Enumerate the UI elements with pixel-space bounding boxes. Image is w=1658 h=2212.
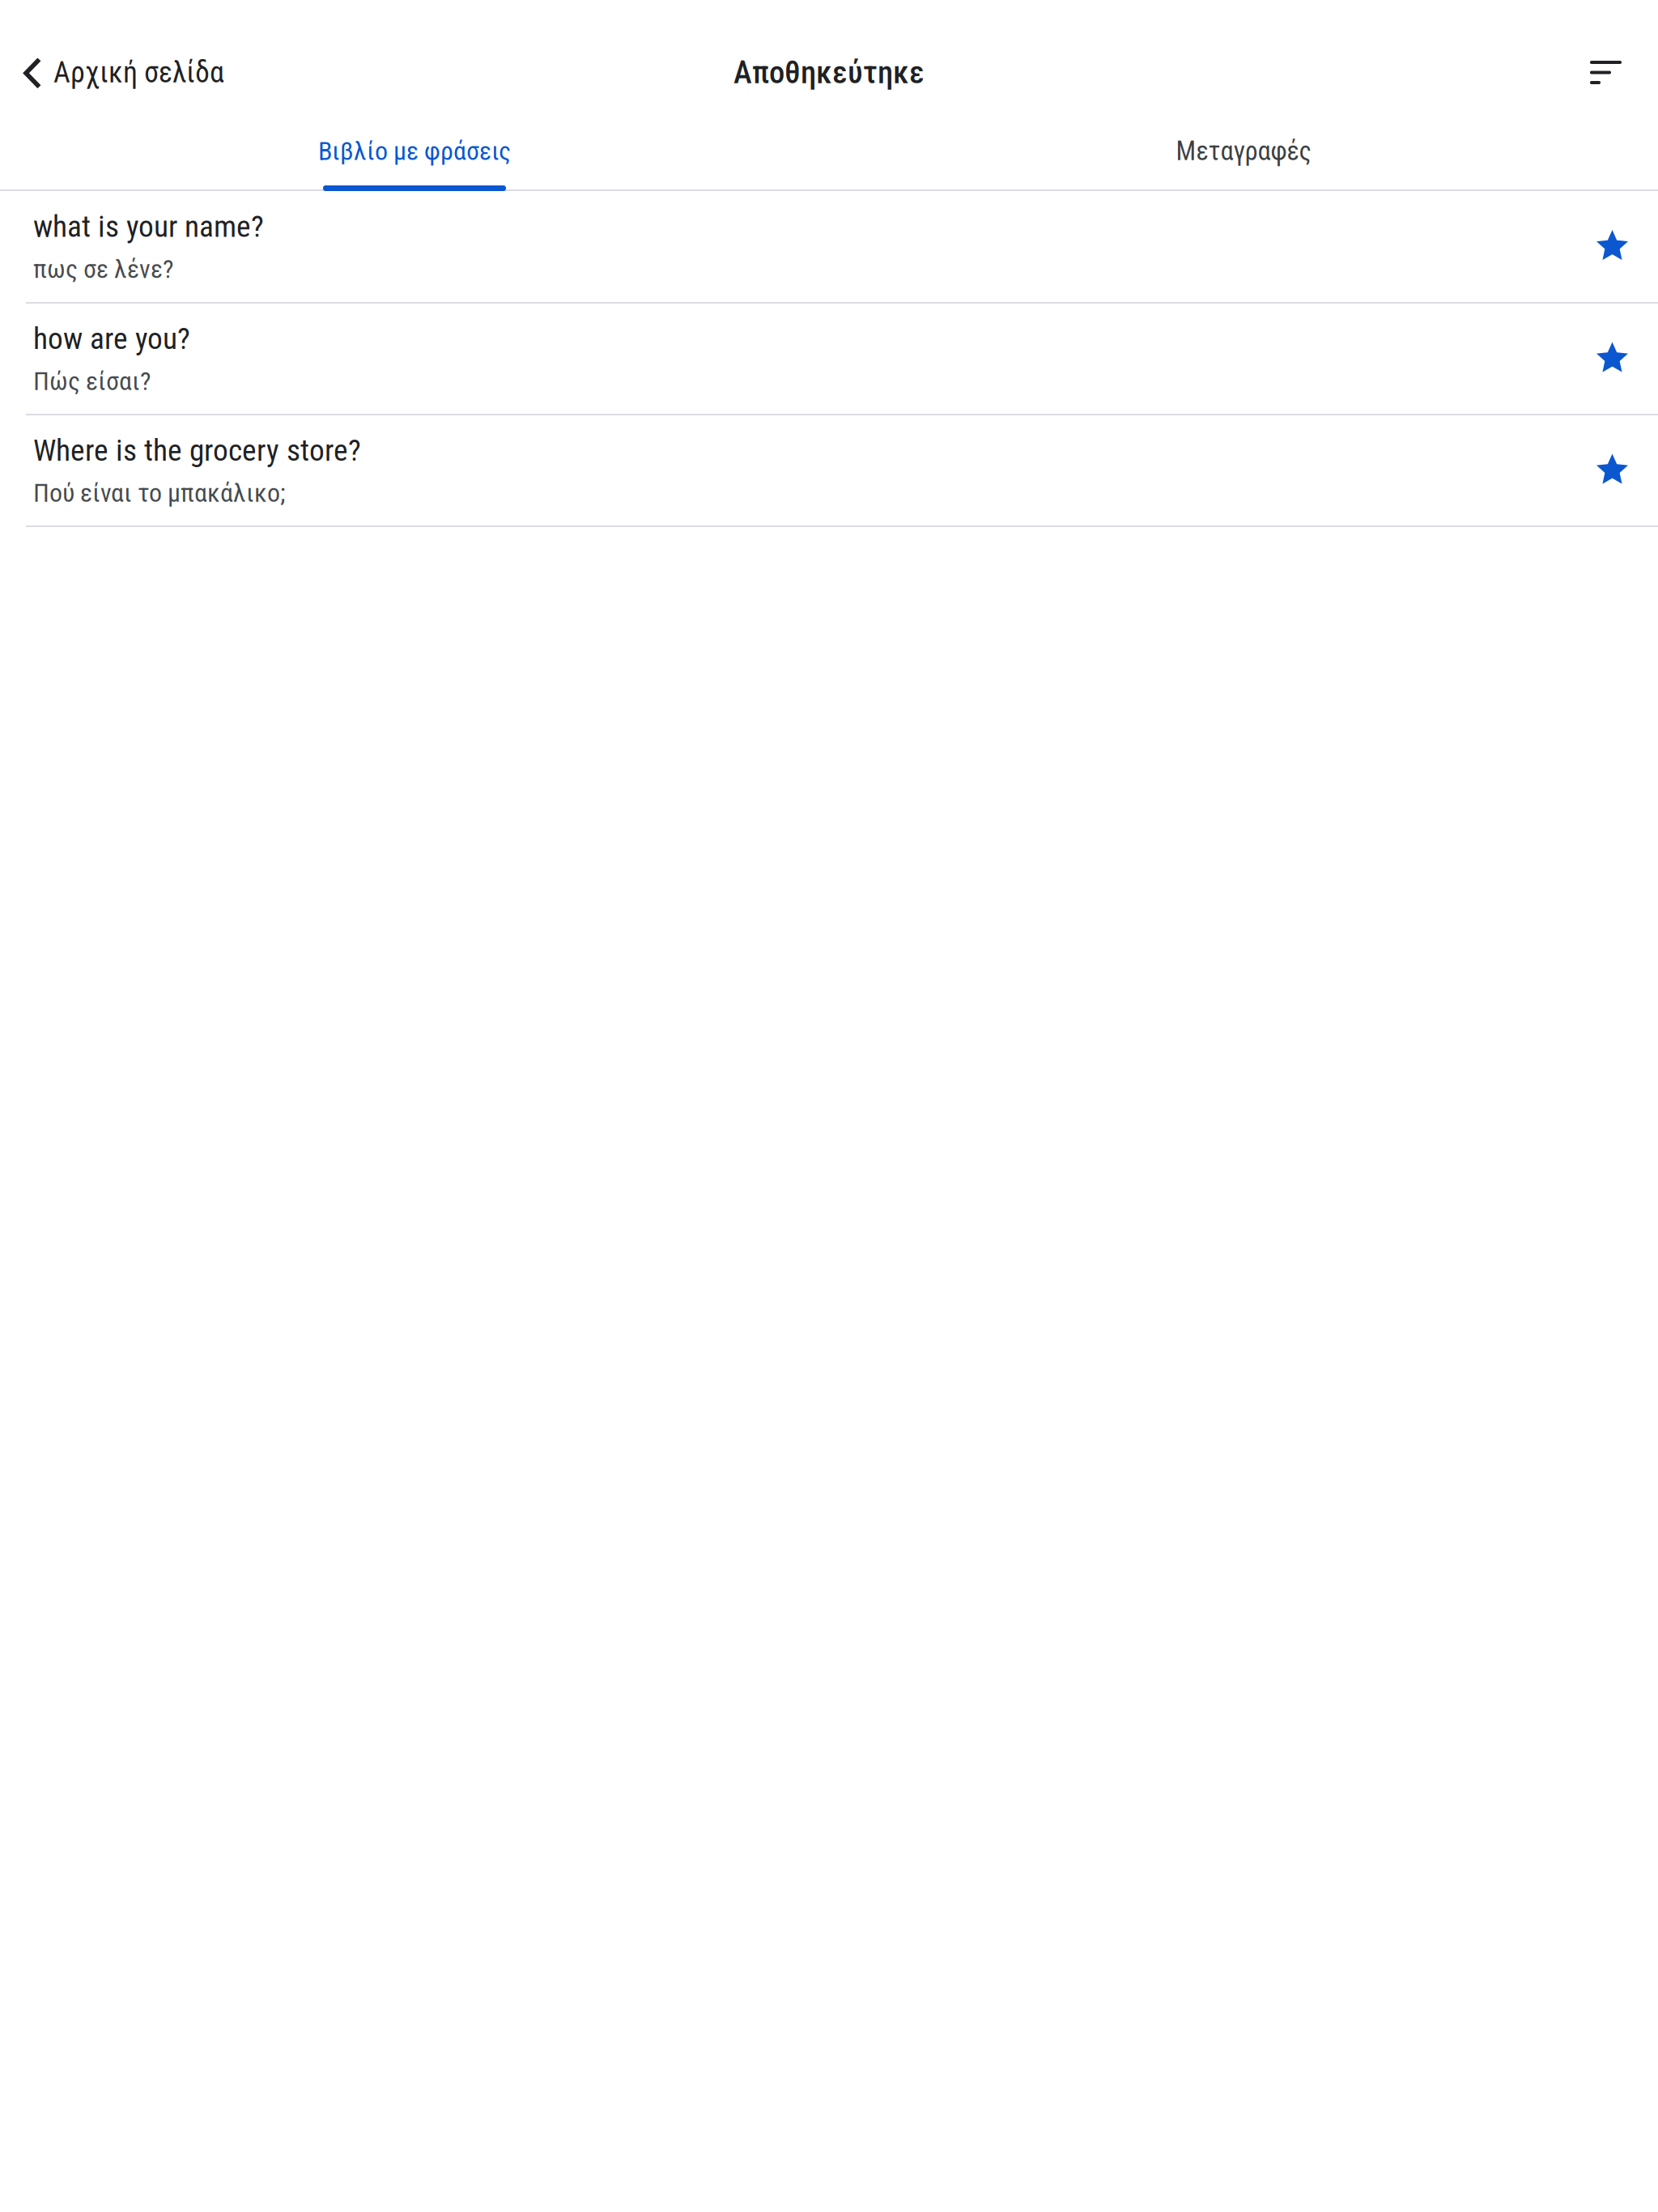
button[interactable]: how are you? (0, 304, 1658, 414)
button[interactable]: Βιβλίο με φράσεις (0, 117, 829, 189)
staticText: Αποθηκεύτηκε (733, 54, 925, 91)
staticText: Μεταγραφές (1176, 136, 1311, 167)
staticText: πως σε λένε? (33, 254, 174, 284)
button[interactable]: what is your name? (0, 191, 1658, 302)
button[interactable]: Where is the grocery store? (0, 415, 1658, 525)
button[interactable]: Αρχική σελίδα (0, 28, 239, 117)
staticText: Βιβλίο με φράσεις (318, 136, 511, 166)
button[interactable]: Ταξινόμηση (1550, 28, 1658, 117)
staticText: how are you? (33, 321, 190, 356)
staticText: Πού είναι το μπακάλικο; (33, 478, 285, 508)
staticText: Where is the grocery store? (33, 433, 361, 468)
staticText: Αρχική σελίδα (53, 55, 224, 90)
staticText: what is your name? (33, 209, 264, 244)
button[interactable]: Μεταγραφές (829, 117, 1658, 189)
staticText: Πώς είσαι? (33, 366, 151, 396)
